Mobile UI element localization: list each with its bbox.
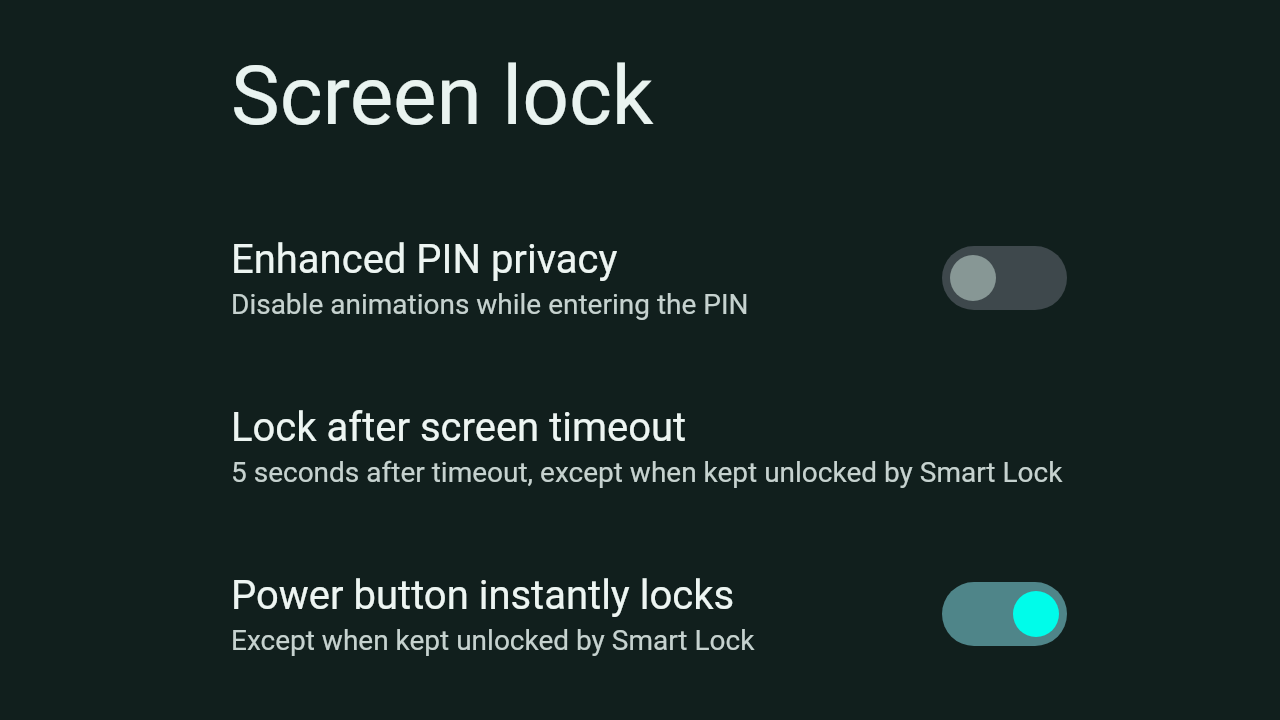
staticText: Power button instantly locks [231,572,735,619]
button[interactable]: Enhanced PIN privacy, off [942,246,1067,310]
button[interactable]: Power button instantly locks, on [942,582,1067,646]
staticText: Except when kept unlocked by Smart Lock [231,624,755,657]
button[interactable]: Enhanced PIN privacy [0,235,1280,321]
staticText: 5 seconds after timeout, except when kep… [231,456,1063,489]
staticText: Screen lock [231,48,654,144]
staticText: Lock after screen timeout [231,404,687,451]
staticText: Enhanced PIN privacy [231,236,618,283]
button[interactable]: Power button instantly locks [0,571,1280,657]
staticText: Disable animations while entering the PI… [231,288,749,321]
button[interactable]: Lock after screen timeout [0,403,1280,489]
